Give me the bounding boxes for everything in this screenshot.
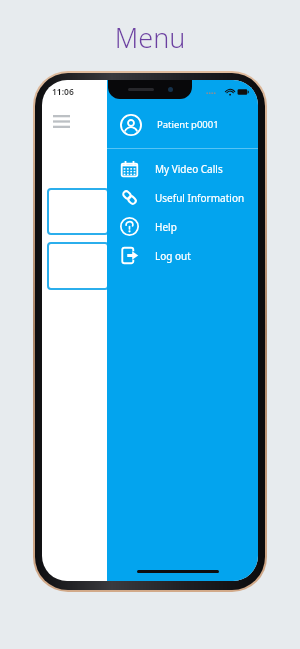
staticText: Log out bbox=[155, 249, 191, 263]
staticText: Help bbox=[155, 220, 177, 234]
button[interactable]: Patient p0001 bbox=[107, 101, 258, 148]
button[interactable]: Log out bbox=[107, 241, 258, 270]
staticText: 11:06 bbox=[52, 86, 74, 98]
button[interactable] bbox=[47, 242, 109, 290]
staticText: Menu bbox=[0, 19, 300, 56]
button[interactable]: Useful Information bbox=[107, 183, 258, 212]
button[interactable]: Open navigation menu bbox=[48, 108, 74, 134]
staticText: My Video Calls bbox=[155, 162, 223, 176]
button[interactable] bbox=[47, 188, 109, 235]
staticText: Useful Information bbox=[155, 191, 245, 205]
staticText: Patient p0001 bbox=[157, 118, 219, 131]
button[interactable]: Help bbox=[107, 212, 258, 241]
button[interactable]: My Video Calls bbox=[107, 154, 258, 183]
